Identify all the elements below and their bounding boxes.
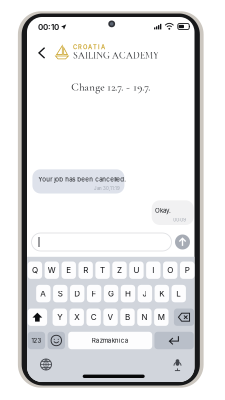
button[interactable]: T [95,261,110,279]
button[interactable]: Send [175,234,190,249]
staticText: C R O A T I A [73,44,105,51]
staticText: L [176,289,181,298]
button[interactable]: B [120,308,135,326]
staticText: B [125,312,130,322]
button[interactable]: U [129,261,144,279]
button[interactable]: J [138,285,152,302]
button[interactable]: 123 [28,332,45,349]
button[interactable]: Y [53,308,67,326]
staticText: Change 12.7. - 19.7. [71,80,150,94]
button[interactable]: H [121,285,135,302]
button[interactable]: Emoji [48,332,65,349]
staticText: J [142,289,147,298]
button[interactable]: Back [31,42,53,64]
staticText: 00:09 [173,217,186,223]
staticText: G [108,289,114,298]
button[interactable]: P [180,261,194,279]
staticText: S [58,289,63,298]
staticText: P [185,265,190,275]
button[interactable]: K [155,285,169,302]
staticText: U [133,265,139,275]
button[interactable]: I [146,261,160,279]
button[interactable]: A [36,285,51,302]
button[interactable]: Next keyboard [38,356,54,372]
staticText: Y [57,312,62,322]
staticText: 123 [31,337,41,344]
button[interactable]: E [61,261,76,279]
button[interactable]: Razmaknica [68,332,152,349]
button[interactable]: Z [112,261,127,279]
staticText: Razmaknica [92,337,129,344]
button[interactable]: Dictate [169,356,185,372]
button[interactable]: R [78,261,93,279]
button[interactable]: W [45,261,59,279]
staticText: I [152,265,154,275]
staticText: X [74,312,79,322]
button[interactable]: F [87,285,101,302]
staticText: W [48,265,56,275]
button[interactable]: Shift [28,308,47,326]
staticText: K [159,289,164,298]
button[interactable]: D [70,285,84,302]
button[interactable]: N [137,308,152,326]
staticText: N [141,312,147,322]
button[interactable]: G [104,285,118,302]
button[interactable]: V [103,308,118,326]
button[interactable]: X [69,308,84,326]
staticText: M [158,312,165,322]
staticText: 00:10 [38,22,59,32]
button[interactable]: S [53,285,67,302]
staticText: A [40,289,46,298]
button[interactable]: C [86,308,101,326]
button[interactable]: L [171,285,186,302]
staticText: Q [32,265,38,275]
staticText: Z [117,265,122,275]
button[interactable]: Delete [174,308,194,326]
button[interactable]: Q [28,261,42,279]
staticText: V [108,312,114,322]
staticText: SAILING ACADEMY [73,50,159,61]
button[interactable]: Return [154,332,194,349]
staticText: Your job has been cancelled. [38,176,126,183]
staticText: O [167,265,173,275]
button[interactable]: O [163,261,177,279]
staticText: T [100,265,105,275]
staticText: Jan 30,11:19 [94,186,120,191]
staticText: Okay. [155,207,171,214]
staticText: H [125,289,131,298]
button[interactable]: M [154,308,168,326]
staticText: C [91,312,97,322]
staticText: E [66,265,71,275]
staticText: D [74,289,80,298]
staticText: R [83,265,88,275]
staticText: F [92,289,97,298]
button[interactable]: C R O A T I A [55,39,175,66]
